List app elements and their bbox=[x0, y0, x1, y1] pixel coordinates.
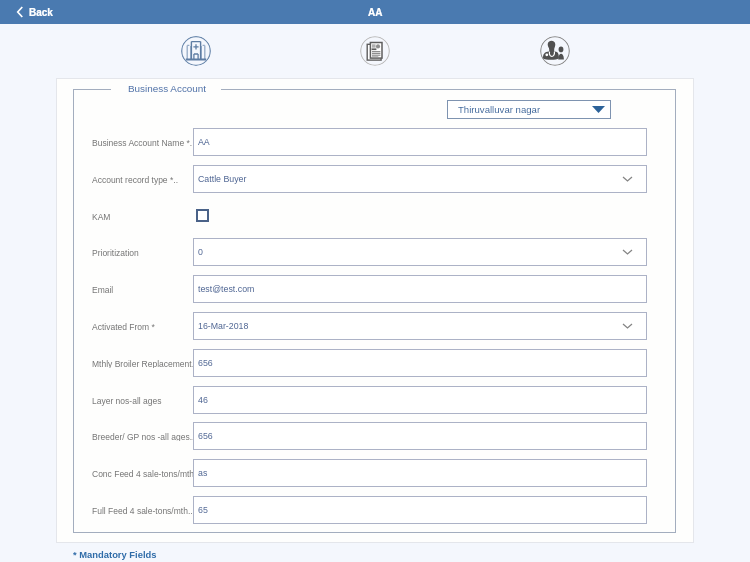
staticText: Business Account bbox=[128, 83, 207, 94]
staticText: Breeder/ GP nos -all ages.. bbox=[92, 432, 193, 441]
button[interactable]: Contacts bbox=[540, 36, 570, 66]
staticText: 46 bbox=[198, 395, 208, 405]
staticText: Layer nos-all ages bbox=[92, 396, 162, 405]
staticText: Prioritization bbox=[92, 248, 139, 257]
button[interactable]: Cattle Buyer bbox=[193, 165, 647, 193]
button[interactable]: Thiruvalluvar nagar bbox=[447, 100, 611, 119]
button[interactable]: 0 bbox=[193, 238, 647, 266]
staticText: 0 bbox=[198, 247, 203, 257]
button[interactable]: Documents bbox=[360, 36, 390, 66]
staticText: 656 bbox=[198, 358, 213, 368]
button[interactable]: 65 bbox=[193, 496, 647, 524]
staticText: 16-Mar-2018 bbox=[198, 321, 249, 331]
staticText: 65 bbox=[198, 505, 208, 515]
staticText: Activated From * bbox=[92, 322, 155, 331]
button[interactable]: 656 bbox=[193, 422, 647, 450]
staticText: * Mandatory Fields bbox=[73, 549, 157, 560]
button[interactable]: Business bbox=[181, 36, 211, 66]
staticText: Full Feed 4 sale-tons/mth.. bbox=[92, 506, 193, 515]
staticText: Conc Feed 4 sale-tons/mth.. bbox=[92, 469, 193, 478]
button[interactable]: Back bbox=[14, 3, 56, 21]
staticText: KAM bbox=[92, 212, 111, 221]
staticText: AA bbox=[368, 7, 383, 18]
staticText: as bbox=[198, 468, 208, 478]
staticText: Thiruvalluvar nagar bbox=[458, 104, 541, 115]
staticText: Mthly Broiler Replacement.. bbox=[92, 359, 193, 368]
button[interactable]: test@test.com bbox=[193, 275, 647, 303]
button[interactable]: as bbox=[193, 459, 647, 487]
staticText: test@test.com bbox=[198, 284, 255, 294]
button[interactable]: 16-Mar-2018 bbox=[193, 312, 647, 340]
staticText: Back bbox=[29, 7, 53, 18]
staticText: AA bbox=[198, 137, 210, 147]
staticText: Cattle Buyer bbox=[198, 174, 247, 184]
staticText: Account record type *.. bbox=[92, 175, 178, 184]
staticText: 656 bbox=[198, 431, 213, 441]
staticText: Business Account Name *.. bbox=[92, 138, 193, 147]
button[interactable]: AA bbox=[193, 128, 647, 156]
staticText: Email bbox=[92, 285, 114, 294]
button[interactable] bbox=[196, 209, 209, 222]
button[interactable]: 656 bbox=[193, 349, 647, 377]
button[interactable]: 46 bbox=[193, 386, 647, 414]
